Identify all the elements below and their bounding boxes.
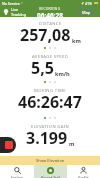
button[interactable]: Stop recording bbox=[0, 137, 16, 153]
button[interactable]: Record Trail bbox=[34, 165, 67, 178]
staticText: ELEVATION GAIN bbox=[31, 124, 70, 130]
staticText: AVERAGE SPEED bbox=[32, 54, 69, 60]
staticText: DISTANCE bbox=[39, 21, 62, 27]
button[interactable]: Show Elevation bbox=[0, 156, 100, 165]
button[interactable]: Live tracking bbox=[3, 7, 27, 17]
button[interactable]: Explore bbox=[0, 165, 34, 178]
staticText: 46:26:47 bbox=[18, 91, 82, 113]
staticText: Map bbox=[82, 10, 91, 15]
staticText: Tracking bbox=[11, 12, 27, 17]
staticText: km/h bbox=[55, 70, 70, 77]
staticText: No Service bbox=[2, 1, 20, 6]
staticText: m bbox=[69, 140, 75, 147]
staticText: Live bbox=[11, 7, 19, 12]
button[interactable]: Map bbox=[77, 8, 95, 16]
staticText: 3.199 bbox=[26, 127, 68, 149]
staticText: 06:46:28 bbox=[37, 11, 63, 17]
other: Live tracking bbox=[3, 9, 9, 15]
staticText: 5,5 bbox=[31, 57, 54, 79]
staticText: MOVING TIME bbox=[34, 88, 67, 94]
staticText: Profile bbox=[78, 175, 89, 178]
staticText: Explore bbox=[11, 175, 23, 178]
staticText: 41% bbox=[85, 1, 93, 6]
staticText: km bbox=[72, 37, 81, 44]
staticText: Show Elevation bbox=[36, 158, 65, 163]
staticText: RECORDING bbox=[39, 6, 61, 11]
staticText: Record Trail bbox=[41, 175, 60, 178]
button[interactable]: Profile bbox=[67, 165, 100, 178]
staticText: 257,08 bbox=[20, 24, 71, 46]
